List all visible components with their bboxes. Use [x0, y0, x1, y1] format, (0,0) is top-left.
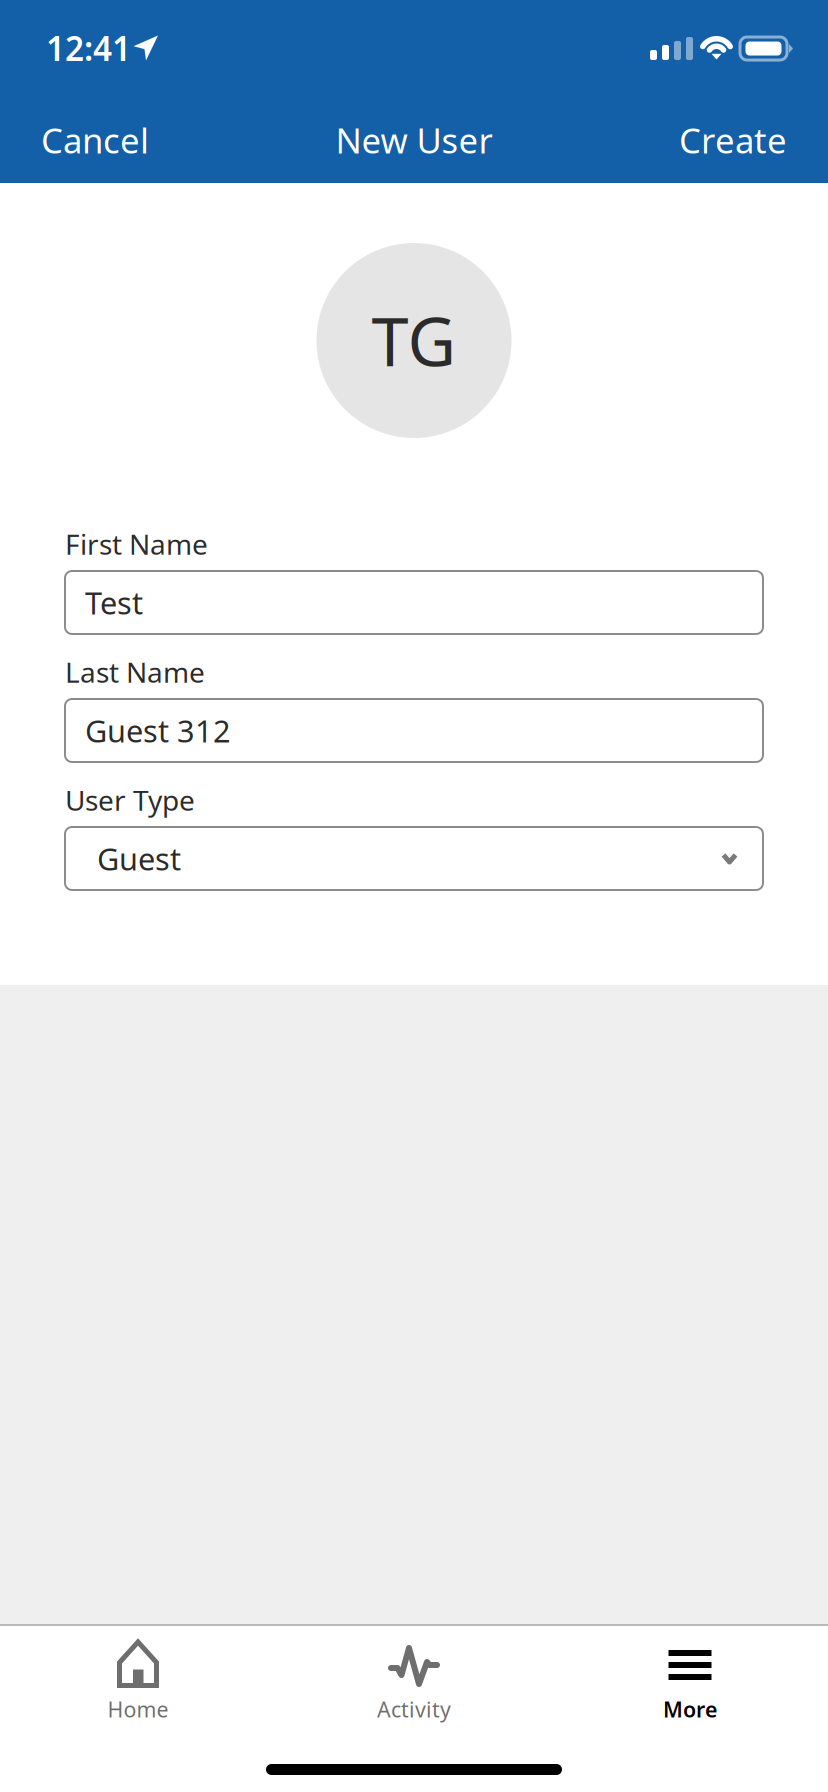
button[interactable]: Activity: [276, 1626, 552, 1736]
staticText: More: [663, 1695, 717, 1723]
staticText: Guest: [97, 838, 181, 879]
staticText: Activity: [377, 1695, 451, 1723]
staticText: TG: [371, 296, 456, 385]
staticText: First Name: [65, 525, 208, 563]
staticText: Home: [107, 1695, 168, 1723]
staticText: Guest 312: [85, 710, 231, 751]
staticText: User Type: [65, 781, 195, 819]
staticText: Last Name: [65, 653, 205, 691]
button[interactable]: Home: [0, 1626, 276, 1736]
button[interactable]: More: [552, 1626, 828, 1736]
button[interactable]: Create: [665, 101, 801, 179]
staticText: 12:41: [46, 26, 131, 70]
button[interactable]: Cancel: [27, 101, 163, 179]
staticText: Create: [679, 117, 787, 163]
staticText: Test: [85, 582, 143, 623]
staticText: New User: [335, 117, 492, 163]
staticText: Cancel: [41, 117, 149, 163]
